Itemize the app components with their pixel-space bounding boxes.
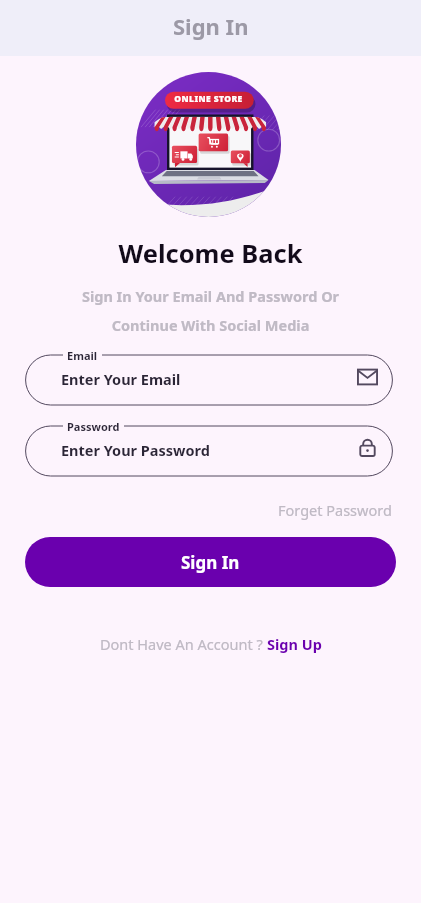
staticText: Password — [67, 419, 120, 434]
button[interactable]: Sign In — [25, 537, 396, 587]
button[interactable]: Password — [25, 416, 393, 476]
staticText: Sign In Your Email And Password Or — [0, 286, 421, 306]
staticText: Welcome Back — [0, 236, 421, 271]
staticText: Enter Your Password — [61, 440, 210, 460]
button[interactable]: Email — [25, 345, 393, 405]
button[interactable]: Forget Password — [274, 496, 396, 524]
staticText: Continue With Social Media — [0, 315, 421, 335]
staticText: Enter Your Email — [61, 369, 181, 389]
other: Email — [357, 367, 378, 387]
staticText: Dont Have An Account ? — [100, 634, 267, 654]
button[interactable]: Sign Up — [267, 634, 322, 654]
other: Password — [357, 438, 378, 458]
staticText: Sign In — [181, 551, 240, 574]
staticText: Sign In — [173, 11, 249, 41]
staticText: ONLINE STORE — [136, 93, 281, 105]
staticText: Email — [67, 348, 98, 363]
